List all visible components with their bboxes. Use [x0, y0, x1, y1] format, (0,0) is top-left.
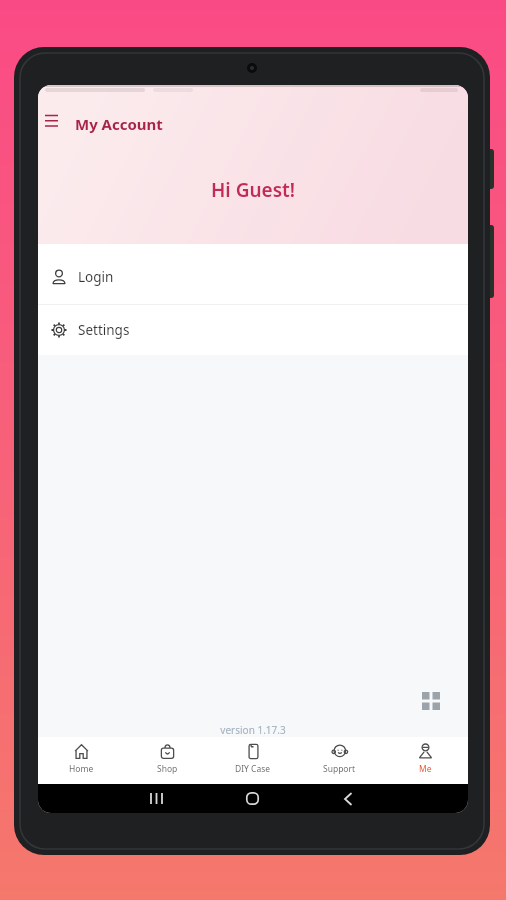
- staticText: My Account: [75, 114, 163, 134]
- staticText: DIY Case: [235, 763, 271, 775]
- button[interactable]: Settings: [38, 305, 468, 355]
- button[interactable]: Home: [38, 737, 124, 784]
- button[interactable]: [344, 793, 352, 805]
- staticText: Home: [69, 763, 94, 775]
- staticText: Settings: [78, 321, 130, 339]
- staticText: Login: [78, 268, 114, 286]
- button[interactable]: Me: [382, 737, 468, 784]
- button[interactable]: Login: [38, 250, 468, 304]
- staticText: Shop: [157, 763, 178, 775]
- staticText: version 1.17.3: [38, 723, 468, 737]
- staticText: Hi Guest!: [38, 177, 468, 203]
- button[interactable]: DIY Case: [210, 737, 296, 784]
- button[interactable]: [246, 792, 259, 805]
- staticText: Support: [323, 763, 356, 775]
- button[interactable]: Shop: [124, 737, 210, 784]
- button[interactable]: [422, 692, 440, 710]
- button[interactable]: [45, 111, 65, 131]
- button[interactable]: [150, 793, 163, 804]
- button[interactable]: Support: [296, 737, 382, 784]
- staticText: Me: [419, 763, 432, 775]
